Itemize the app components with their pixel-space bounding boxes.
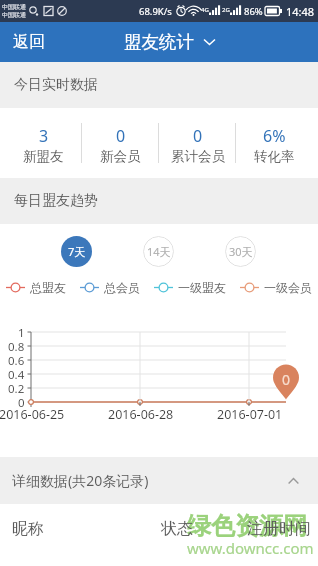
staticText: 6%: [263, 125, 286, 147]
staticText: 2016-06-25: [0, 406, 65, 423]
button[interactable]: 0: [159, 108, 236, 178]
button[interactable]: 0: [82, 108, 159, 178]
staticText: 30天: [229, 244, 253, 259]
staticText: 7天: [68, 244, 86, 259]
other: Show options: [203, 38, 216, 46]
staticText: 0: [282, 370, 291, 386]
staticText: 68.9K/s: [139, 5, 172, 18]
staticText: 14:48: [286, 4, 315, 19]
staticText: 1: [18, 325, 25, 339]
button[interactable]: 14天: [143, 236, 174, 267]
staticText: 0.2: [8, 381, 25, 395]
staticText: 0.8: [8, 339, 25, 353]
staticText: 累计会员: [171, 148, 225, 165]
staticText: 2016-06-28: [108, 406, 174, 423]
button[interactable]: 盟友统计: [118, 22, 200, 62]
staticText: 4G: [201, 6, 209, 14]
staticText: 今日实时数据: [14, 76, 98, 94]
staticText: 新会员: [100, 148, 141, 165]
staticText: 注册时间: [247, 519, 311, 539]
staticText: 0: [116, 125, 126, 147]
staticText: 一级盟友: [178, 280, 226, 295]
button[interactable]: 返回: [0, 22, 58, 62]
staticText: 详细数据(共20条记录): [12, 471, 149, 490]
button[interactable]: 3: [5, 108, 82, 178]
button[interactable]: 30天: [225, 236, 256, 267]
staticText: 盟友统计: [124, 31, 194, 53]
staticText: 86%: [244, 5, 263, 18]
button[interactable]: 详细数据(共20条记录): [0, 457, 318, 504]
button[interactable]: 6%: [236, 108, 313, 178]
staticText: 总会员: [104, 280, 140, 295]
staticText: 3: [39, 125, 49, 147]
staticText: 0: [18, 395, 25, 409]
staticText: 昵称: [12, 519, 44, 539]
staticText: 新盟友: [23, 148, 64, 165]
button[interactable]: 7天: [61, 236, 92, 267]
staticText: 2016-07-01: [217, 406, 283, 423]
staticText: 中国联通: [2, 11, 26, 19]
staticText: 中国联通: [2, 3, 26, 11]
staticText: 0.4: [8, 367, 25, 381]
staticText: 2G: [222, 6, 230, 14]
staticText: 0.6: [8, 353, 25, 367]
staticText: 每日盟友趋势: [14, 192, 98, 210]
staticText: 状态: [161, 519, 193, 539]
other: Collapse: [288, 478, 299, 484]
staticText: 绿色资源网: [187, 511, 307, 541]
staticText: 14天: [147, 244, 171, 259]
staticText: 0: [193, 125, 203, 147]
staticText: 转化率: [254, 148, 295, 165]
staticText: 总盟友: [30, 280, 66, 295]
staticText: www.downcc.com: [187, 538, 314, 558]
staticText: 一级会员: [264, 280, 312, 295]
staticText: 返回: [13, 32, 45, 52]
